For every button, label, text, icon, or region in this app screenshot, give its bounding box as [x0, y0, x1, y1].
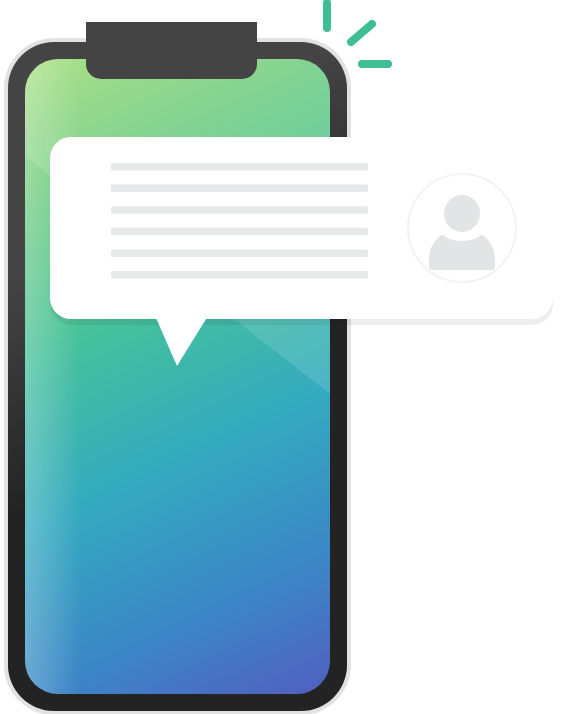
- button[interactable]: Incoming notification message card: [0, 0, 573, 714]
- button[interactable]: Phone device preview: [0, 0, 573, 714]
